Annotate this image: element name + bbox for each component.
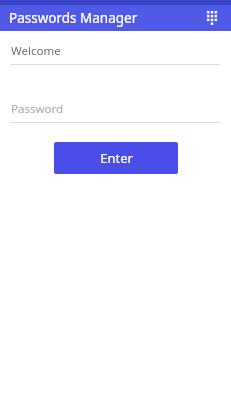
button[interactable]: Enter [54,142,178,174]
staticText: Welcome [11,43,61,59]
button[interactable]: Welcome [0,43,231,65]
button[interactable]: Apps menu [199,5,225,31]
staticText: Passwords Manager [9,9,138,27]
button[interactable]: Password [0,101,231,123]
staticText: Password [11,101,64,117]
staticText: Enter [100,149,133,167]
